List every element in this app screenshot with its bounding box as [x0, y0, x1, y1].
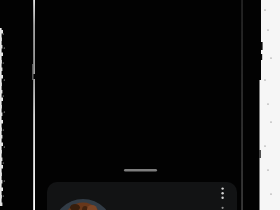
- button[interactable]: [47, 182, 237, 210]
- button[interactable]: [213, 183, 232, 205]
- button[interactable]: [53, 199, 113, 210]
